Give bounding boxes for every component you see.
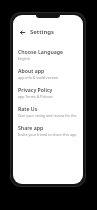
button[interactable]: Privacy Policy xyxy=(18,83,78,102)
staticText: app Terms & Policies xyxy=(18,94,53,99)
button[interactable]: Rate Us xyxy=(18,102,78,121)
staticText: Choose Language xyxy=(18,48,64,55)
button[interactable]: Choose Language xyxy=(18,45,78,64)
staticText: About app xyxy=(18,67,45,74)
staticText: Settings xyxy=(30,28,54,36)
button[interactable]: Share app xyxy=(18,121,78,140)
staticText: Privacy Policy xyxy=(18,86,53,93)
button[interactable]: Back xyxy=(17,27,27,37)
staticText: Share app xyxy=(18,124,44,131)
staticText: Rate Us xyxy=(18,105,38,112)
staticText: app info & build version xyxy=(18,75,59,80)
staticText: Give your rating and review for the app xyxy=(18,113,78,118)
button[interactable]: About app xyxy=(18,64,78,83)
staticText: English xyxy=(18,56,31,61)
staticText: Invite your friend to share this app xyxy=(18,132,77,137)
